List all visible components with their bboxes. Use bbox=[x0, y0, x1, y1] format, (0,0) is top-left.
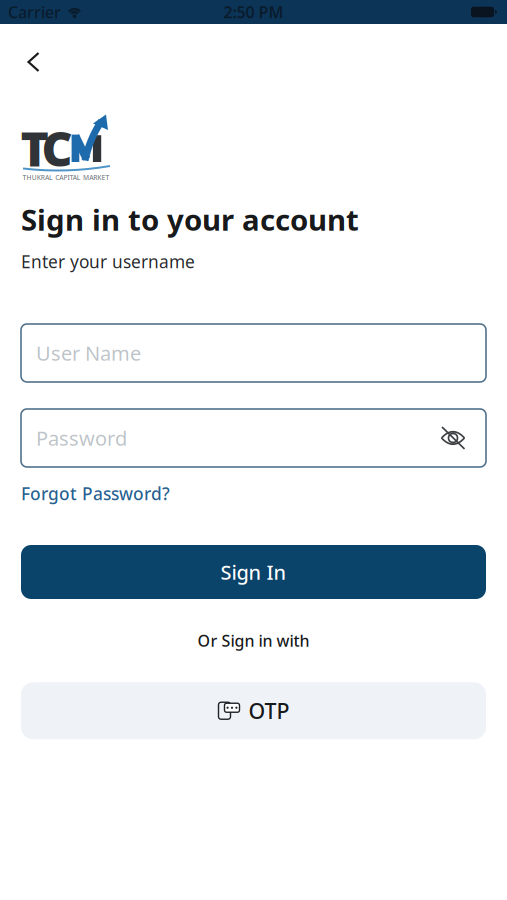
staticText: THUKRAL CAPITAL MARKET bbox=[22, 173, 110, 182]
staticText: User Name bbox=[36, 340, 141, 366]
button[interactable]: Back bbox=[0, 44, 40, 80]
button[interactable]: Sign In bbox=[21, 545, 486, 599]
staticText: Forgot Password? bbox=[21, 482, 170, 505]
staticText: T bbox=[20, 116, 48, 180]
button[interactable]: Forgot Password? bbox=[21, 482, 170, 505]
staticText: C bbox=[41, 116, 72, 180]
staticText: Sign in to your account bbox=[21, 200, 359, 239]
staticText: Enter your username bbox=[21, 250, 195, 273]
button[interactable]: Password bbox=[21, 409, 486, 467]
staticText: Or Sign in with bbox=[197, 630, 309, 651]
staticText: Carrier bbox=[8, 1, 61, 23]
button[interactable]: User Name bbox=[21, 324, 486, 382]
button[interactable]: OTP bbox=[21, 682, 486, 739]
staticText: OTP bbox=[248, 697, 289, 725]
staticText: Password bbox=[36, 425, 127, 451]
staticText: 2:50 PM bbox=[223, 1, 283, 23]
staticText: Sign In bbox=[220, 559, 286, 585]
